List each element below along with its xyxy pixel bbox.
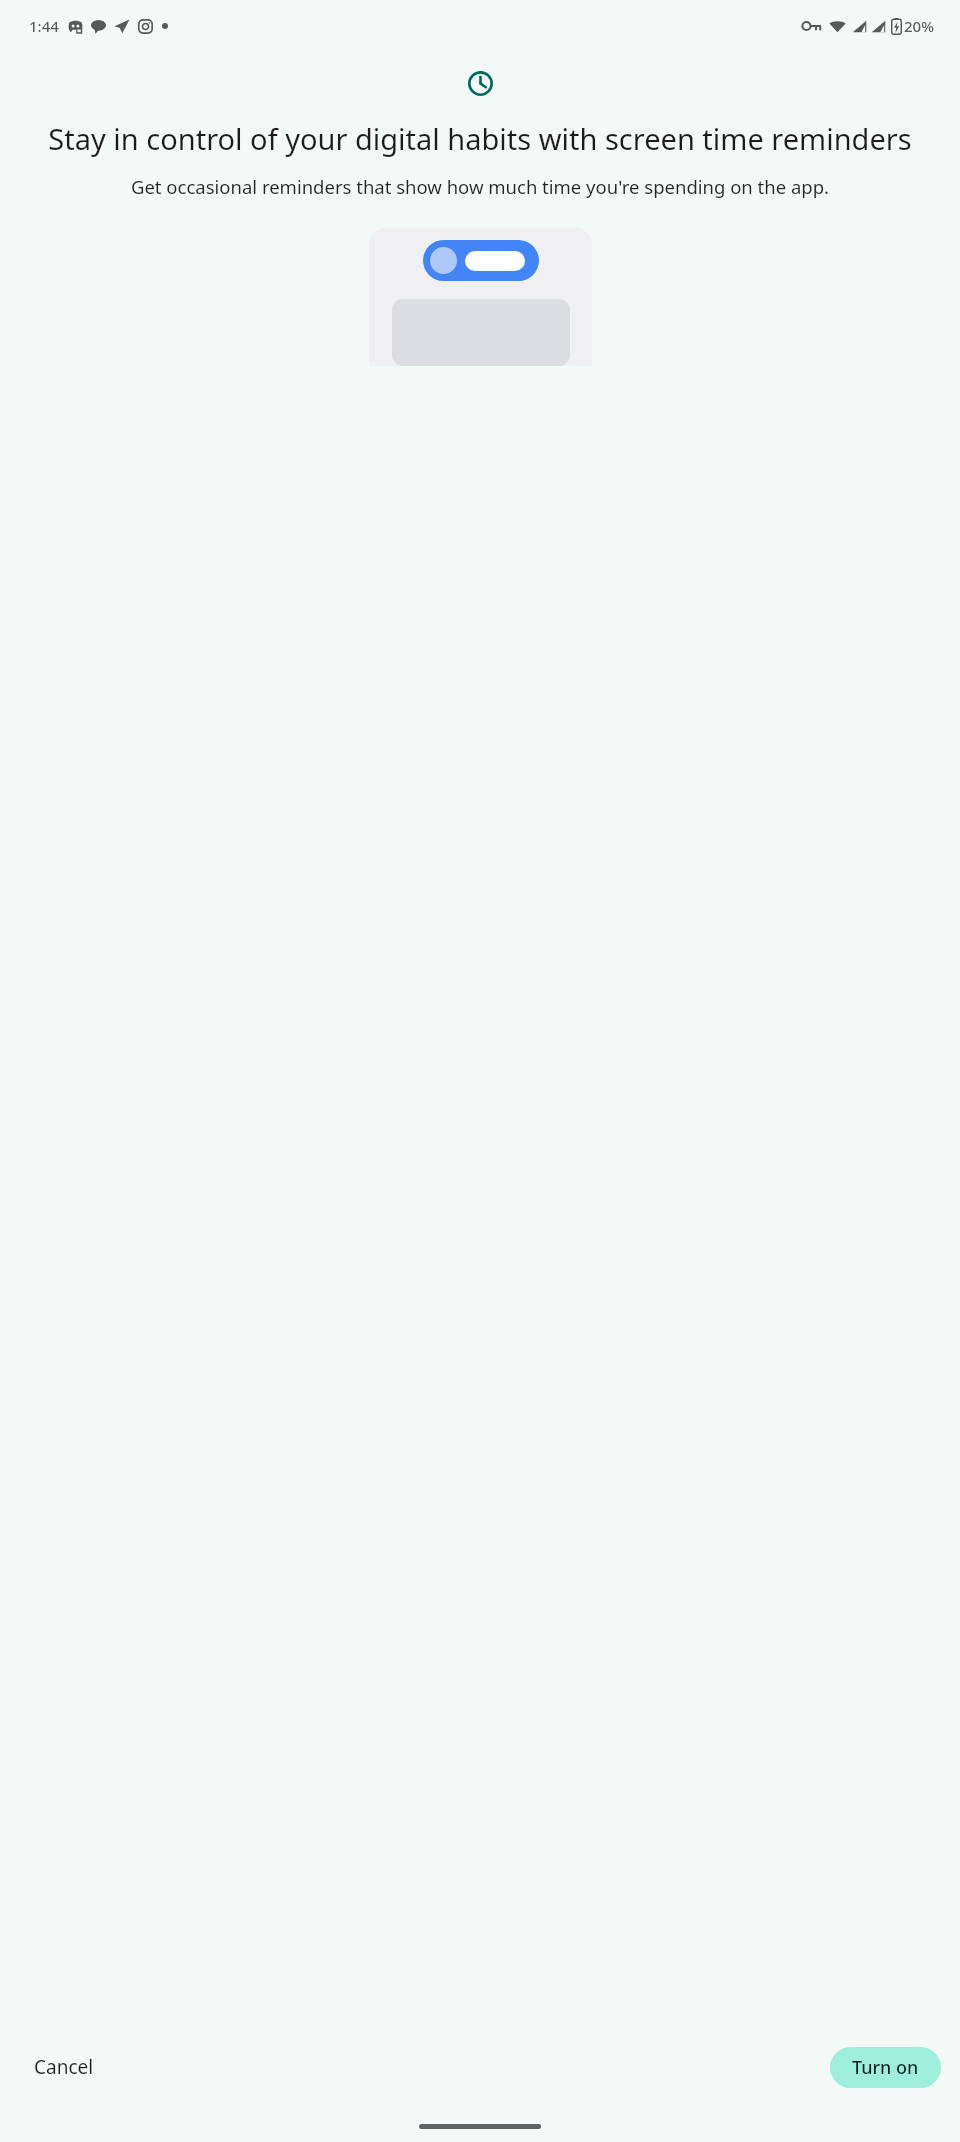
button[interactable]: Cancel bbox=[24, 2042, 104, 2092]
button[interactable]: Turn on bbox=[830, 2047, 941, 2088]
other: Screen time bbox=[468, 71, 493, 96]
staticText: Cancel bbox=[34, 2054, 94, 2080]
staticText: Stay in control of your digital habits w… bbox=[30, 119, 930, 158]
staticText: 20% bbox=[904, 16, 934, 36]
staticText: Get occasional reminders that show how m… bbox=[16, 174, 944, 199]
staticText: Turn on bbox=[852, 2055, 919, 2080]
staticText: 1:44 bbox=[29, 16, 59, 36]
